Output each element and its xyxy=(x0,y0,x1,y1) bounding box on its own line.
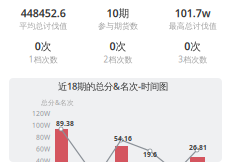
staticText: 近18期的总分&名次-时间图 xyxy=(58,80,168,92)
staticText: 448452.6 xyxy=(21,6,66,20)
staticText: 54.16 xyxy=(114,134,132,143)
staticText: 参与期货数 xyxy=(98,21,138,31)
button[interactable]: 0次 xyxy=(6,39,81,65)
staticText: 60W xyxy=(36,145,50,153)
staticText: 0次 xyxy=(184,39,201,53)
button[interactable]: 448452.6 xyxy=(6,6,81,31)
staticText: 0次 xyxy=(109,39,126,53)
staticText: 80W xyxy=(36,133,50,142)
staticText: 平均总讨伐值 xyxy=(19,21,67,31)
staticText: 120W xyxy=(32,109,50,118)
button[interactable]: 0次 xyxy=(81,39,155,65)
button[interactable]: 10期 xyxy=(81,6,155,31)
button[interactable]: 101.7w xyxy=(155,6,230,31)
staticText: 0次 xyxy=(35,39,52,53)
staticText: 89.38 xyxy=(56,119,74,128)
staticText: 最高总讨伐值 xyxy=(169,21,217,31)
staticText: 3档次数 xyxy=(178,54,207,65)
staticText: 总分&名次 xyxy=(41,98,74,107)
staticText: 19.6 xyxy=(143,150,157,159)
staticText: 100W xyxy=(32,121,50,130)
staticText: 26.81 xyxy=(189,143,207,152)
staticText: 1档次数 xyxy=(29,54,58,65)
staticText: 40W xyxy=(36,156,50,162)
staticText: 101.7w xyxy=(175,6,211,20)
staticText: 10期 xyxy=(106,6,129,20)
button[interactable]: 0次 xyxy=(155,39,230,65)
staticText: 2档次数 xyxy=(103,54,132,65)
